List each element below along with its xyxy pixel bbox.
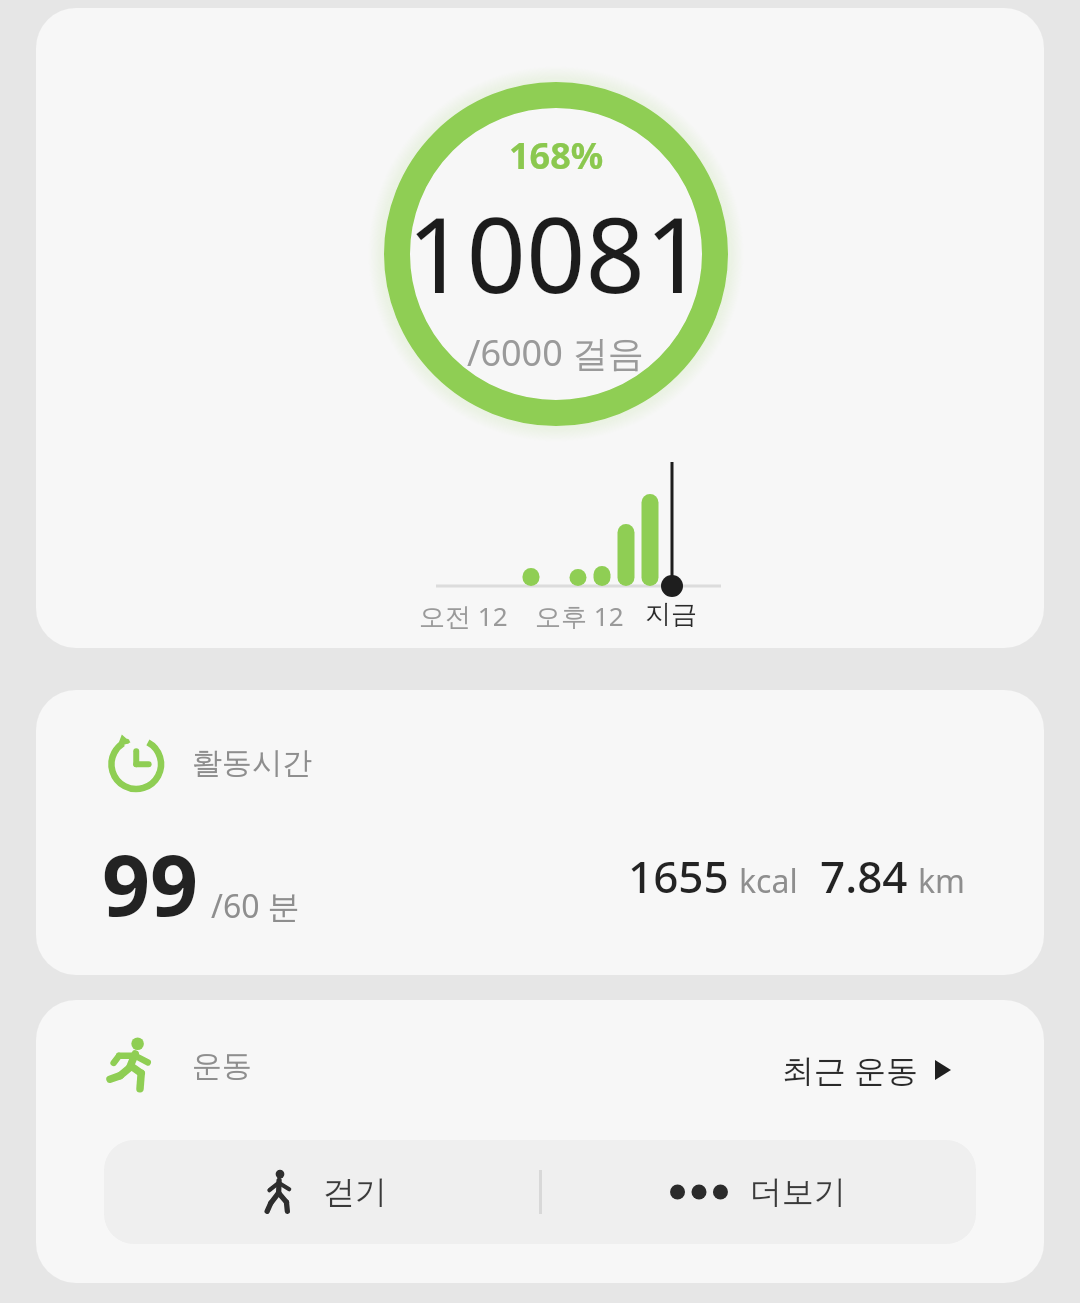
staticText: 오전 12 bbox=[419, 598, 508, 634]
button[interactable]: 더보기 bbox=[540, 1140, 976, 1244]
staticText: kcal bbox=[739, 859, 798, 903]
staticText: 운동 bbox=[192, 1047, 252, 1085]
button[interactable]: 최근 운동 bbox=[776, 1042, 959, 1098]
button[interactable]: 걷기 bbox=[104, 1140, 540, 1244]
staticText: 10081 bbox=[407, 182, 705, 324]
staticText: 활동시간 bbox=[192, 744, 312, 782]
other: Active time bbox=[104, 732, 166, 794]
staticText: 더보기 bbox=[750, 1172, 846, 1212]
staticText: /60 분 bbox=[211, 884, 300, 928]
staticText: /6000 걸음 bbox=[467, 328, 645, 377]
staticText: 걷기 bbox=[323, 1172, 387, 1212]
button[interactable]: Active time bbox=[36, 690, 1044, 975]
button[interactable]: 168% bbox=[36, 8, 1044, 648]
staticText: 최근 운동 bbox=[782, 1048, 919, 1092]
staticText: 1655 bbox=[628, 846, 729, 906]
staticText: 7.84 bbox=[820, 846, 908, 906]
staticText: 99 bbox=[102, 826, 199, 940]
staticText: 지금 bbox=[645, 598, 697, 631]
staticText: km bbox=[918, 859, 966, 903]
staticText: 오후 12 bbox=[535, 598, 624, 634]
other: Exercise bbox=[104, 1036, 164, 1096]
staticText: 168% bbox=[509, 131, 604, 180]
